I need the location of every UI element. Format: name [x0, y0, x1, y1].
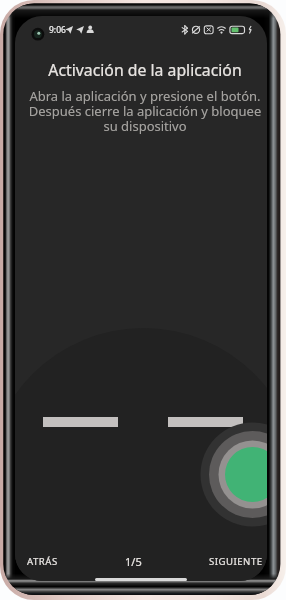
staticText: Abra la aplicación y presione el botón. …: [19, 87, 267, 134]
staticText: Activación de la aplicación: [19, 59, 267, 81]
button[interactable]: SIGUIENTE: [203, 546, 267, 576]
button[interactable]: ATRÁS: [19, 546, 65, 576]
staticText: SIGUIENTE: [209, 555, 263, 568]
staticText: ATRÁS: [27, 555, 58, 568]
staticText: 9:06: [49, 24, 66, 36]
staticText: 1/5: [125, 554, 142, 569]
